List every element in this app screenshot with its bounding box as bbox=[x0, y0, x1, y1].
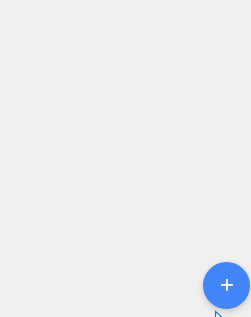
button[interactable]: Add bbox=[203, 262, 250, 309]
